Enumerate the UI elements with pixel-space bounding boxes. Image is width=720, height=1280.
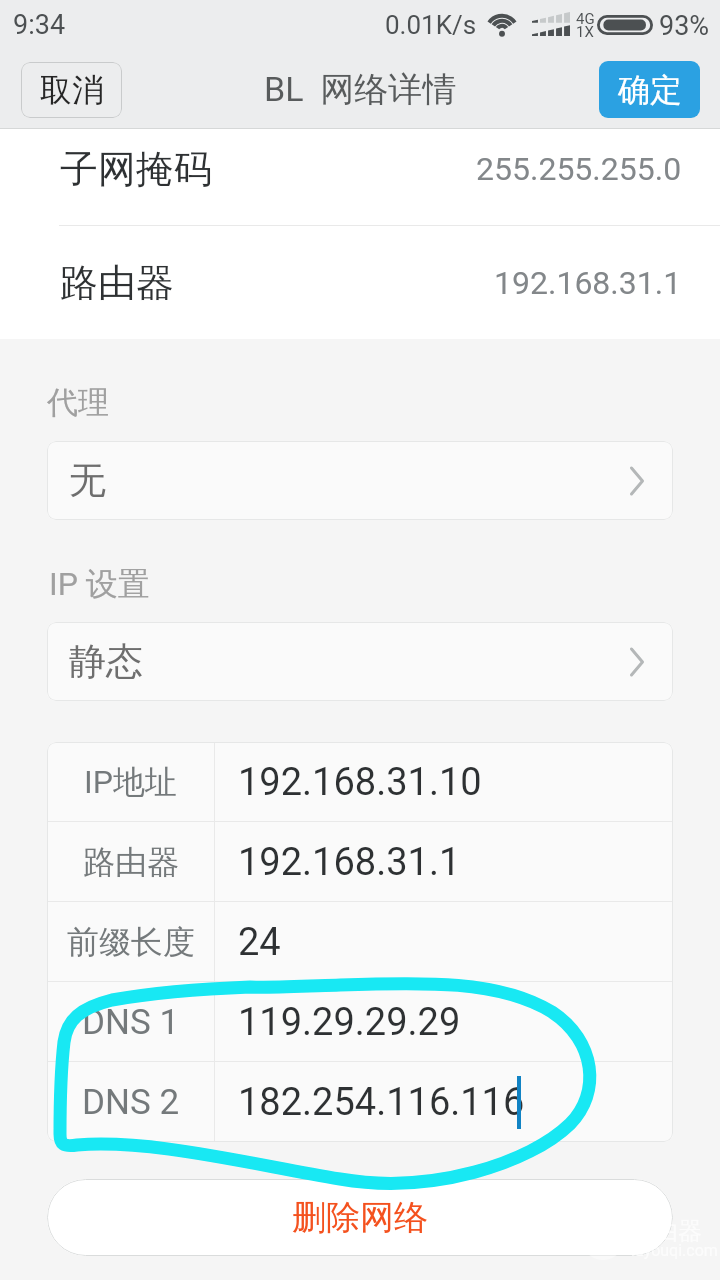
staticText: 192.168.31.1 [238,840,461,885]
staticText: 代理 [47,383,109,422]
staticText: 确定 [618,70,682,110]
staticText: 路由器 [83,842,179,882]
button[interactable]: DNS 1 [47,982,673,1062]
staticText: 静态 [69,638,143,685]
staticText: 119.29.29.29 [238,1000,461,1045]
staticText: 93% [659,10,710,42]
button[interactable]: DNS 2 [47,1062,673,1142]
other: Mobile signal [532,12,570,36]
button[interactable]: 路由器 [0,226,720,339]
staticText: 0.01K/s [385,10,477,40]
staticText: 取消 [40,70,104,110]
button[interactable]: 子网掩码 [0,129,720,226]
staticText: DNS 1 [82,1002,180,1043]
staticText: BL 网络详情 [264,68,457,111]
other: Open [630,649,644,675]
staticText: 24 [238,920,281,965]
staticText: 255.255.255.0 [476,150,682,188]
staticText: 9:34 [13,9,66,41]
staticText: 1X [576,23,594,41]
staticText: 删除网络 [292,1196,428,1239]
button[interactable]: 前缀长度 [47,902,673,982]
other: Wi-Fi [484,12,520,36]
button[interactable]: 取消 [21,62,122,118]
staticText: 182.254.116.116 [238,1080,525,1125]
staticText: 路由器 [60,259,174,307]
button[interactable]: 静态 [47,622,673,701]
staticText: 192.168.31.10 [238,760,482,805]
staticText: 192.168.31.1 [494,264,682,302]
staticText: 4G [576,10,595,28]
staticText: 路由器 [630,1216,702,1246]
staticText: 子网掩码 [60,145,212,193]
other: Open [630,468,644,494]
button[interactable]: 删除网络 [47,1179,673,1256]
button[interactable]: 路由器 [47,822,673,902]
button[interactable]: IP地址 [47,742,673,822]
staticText: IP地址 [84,762,177,802]
staticText: DNS 2 [82,1082,180,1123]
staticText: luyouqi.com [631,1241,718,1260]
other: Battery [597,15,653,35]
staticText: 前缀长度 [67,922,195,962]
button[interactable]: 无 [47,441,673,520]
staticText: IP 设置 [49,564,150,604]
staticText: 无 [69,457,106,504]
button[interactable]: 确定 [599,61,700,118]
other: Highlight annotation [0,0,720,1280]
